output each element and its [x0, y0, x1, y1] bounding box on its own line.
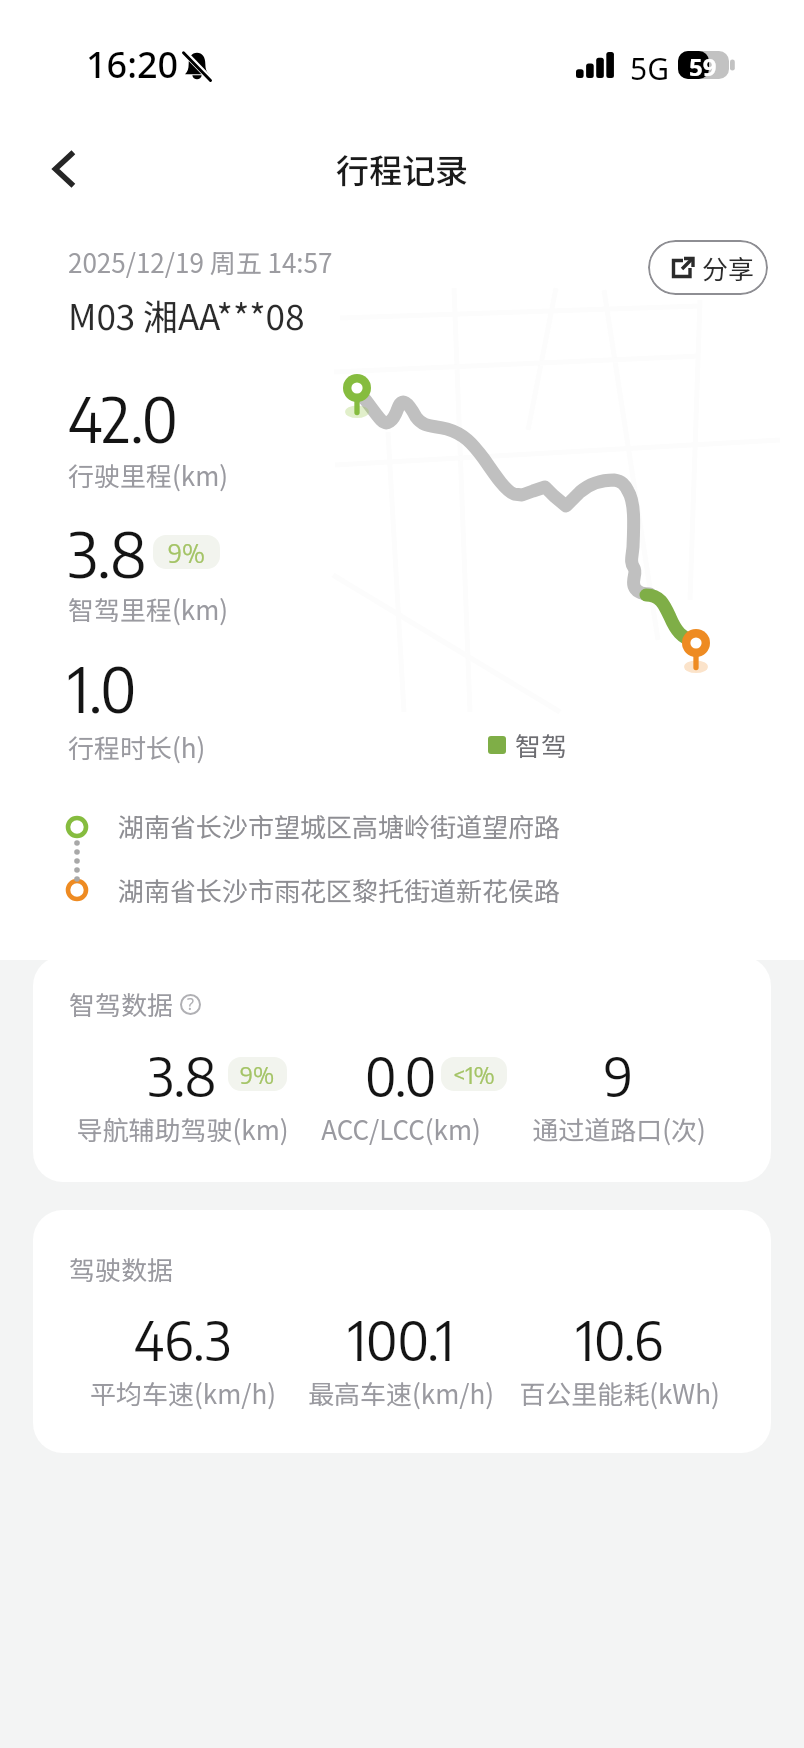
staticText: 百公里能耗(kWh) [519, 1374, 720, 1412]
staticText: 最高车速(km/h) [308, 1374, 494, 1412]
staticText: 分享 [702, 249, 755, 287]
staticText: 3.8 [148, 1041, 217, 1108]
staticText: 10.6 [576, 1305, 663, 1372]
staticText: 通过道路口(次) [532, 1110, 706, 1148]
staticText: 平均车速(km/h) [90, 1374, 276, 1412]
staticText: 42.0 [68, 379, 178, 456]
staticText: 0.0 [365, 1041, 437, 1108]
staticText: 9 [604, 1041, 634, 1108]
staticText: 驾驶数据 [69, 1250, 174, 1288]
staticText: <1% [453, 1059, 495, 1089]
staticText: 5G [630, 48, 669, 89]
staticText: 3.8 [68, 514, 147, 591]
button[interactable]: 分享 [648, 240, 768, 295]
staticText: ACC/LCC(km) [321, 1110, 481, 1148]
staticText: 湖南省长沙市雨花区黎托街道新花侯路 [118, 871, 561, 909]
staticText: 46.3 [134, 1305, 232, 1372]
staticText: M03 湘AA***08 [68, 289, 305, 340]
staticText: 智驾数据 [69, 985, 174, 1023]
staticText: 湖南省长沙市望城区高塘岭街道望府路 [118, 807, 561, 845]
staticText: 9% [168, 536, 205, 568]
staticText: 2025/12/19 周五 14:57 [68, 243, 333, 281]
button[interactable]: About smart driving data [180, 994, 201, 1015]
staticText: ? [187, 993, 194, 1014]
staticText: 59 [689, 50, 717, 78]
button[interactable]: Back [30, 136, 96, 202]
staticText: 智驾 [515, 726, 568, 764]
staticText: 16:20 [86, 40, 179, 89]
staticText: 导航辅助驾驶(km) [76, 1110, 289, 1148]
staticText: 行程记录 [336, 145, 468, 193]
button[interactable]: Trip route map [330, 285, 780, 715]
staticText: 9% [240, 1059, 275, 1089]
staticText: 行程时长(h) [68, 728, 206, 766]
staticText: 100.1 [348, 1305, 455, 1372]
staticText: 1.0 [68, 649, 137, 726]
staticText: 行驶里程(km) [68, 456, 229, 494]
staticText: 智驾里程(km) [68, 590, 229, 628]
